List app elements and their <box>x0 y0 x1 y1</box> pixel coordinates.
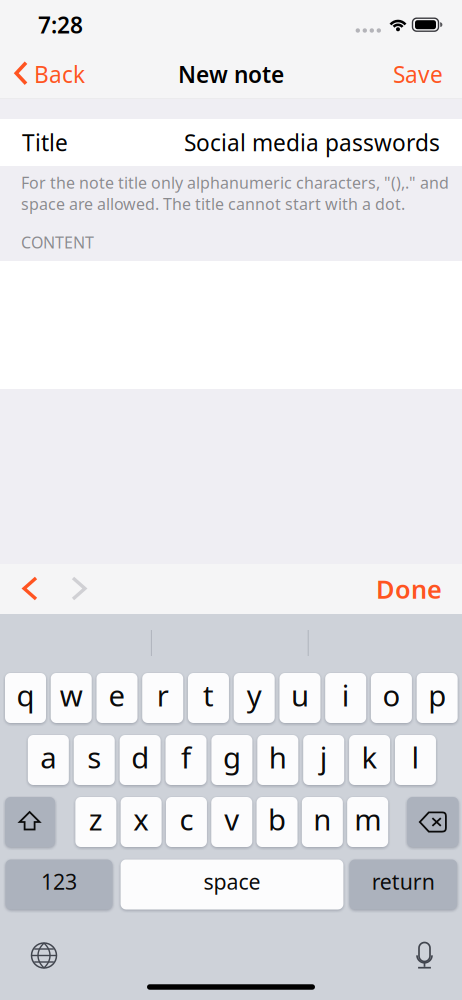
staticText: g <box>223 737 241 776</box>
staticText: h <box>269 737 287 776</box>
staticText: f <box>181 737 191 776</box>
staticText: Back <box>34 59 85 89</box>
button[interactable]: u <box>279 673 320 723</box>
staticText: For the note title only alphanumeric cha… <box>21 172 449 193</box>
staticText: n <box>313 799 331 838</box>
staticText: z <box>89 799 103 838</box>
button[interactable]: return <box>349 859 457 909</box>
button[interactable]: w <box>51 673 92 723</box>
staticText: k <box>362 737 378 776</box>
staticText: j <box>320 737 328 776</box>
staticText: y <box>247 675 262 714</box>
button[interactable]: s <box>74 735 115 785</box>
staticText: space are allowed. The title cannot star… <box>21 193 405 214</box>
staticText: q <box>16 675 34 714</box>
button[interactable]: r <box>142 673 183 723</box>
button[interactable]: Dictate <box>415 941 433 969</box>
staticText: Save <box>393 59 443 89</box>
staticText: b <box>268 799 286 838</box>
staticText: Done <box>376 572 442 606</box>
staticText: w <box>60 675 83 714</box>
button[interactable]: a <box>28 735 69 785</box>
button[interactable]: 123 <box>5 859 112 909</box>
button[interactable]: b <box>256 797 297 847</box>
staticText: d <box>131 737 149 776</box>
button[interactable]: v <box>211 797 252 847</box>
button[interactable]: d <box>120 735 161 785</box>
button[interactable]: Shift <box>5 797 55 847</box>
button[interactable]: space <box>121 859 343 909</box>
button[interactable]: y <box>234 673 275 723</box>
staticText: Title <box>22 127 68 157</box>
button[interactable]: Previous field <box>0 565 73 613</box>
button[interactable]: Delete <box>407 797 459 847</box>
staticText: x <box>133 799 149 838</box>
staticText: s <box>87 737 101 776</box>
button[interactable]: k <box>349 735 390 785</box>
staticText: o <box>382 675 400 714</box>
staticText: CONTENT <box>21 232 94 253</box>
button[interactable]: t <box>188 673 229 723</box>
staticText: return <box>372 867 435 896</box>
button[interactable]: Change keyboard <box>30 941 58 969</box>
button[interactable]: p <box>417 673 458 723</box>
button[interactable]: n <box>302 797 343 847</box>
button[interactable]: x <box>121 797 162 847</box>
button[interactable]: l <box>395 735 436 785</box>
staticText: space <box>203 867 260 896</box>
staticText: Insta: 17Hg%22bNZ&2s <box>21 576 257 604</box>
staticText: t <box>203 675 214 714</box>
staticText: New note <box>178 59 284 89</box>
button[interactable]: f <box>165 735 206 785</box>
button[interactable]: Next field <box>73 565 118 613</box>
button[interactable]: z <box>75 797 116 847</box>
button[interactable]: e <box>96 673 137 723</box>
button[interactable]: o <box>371 673 412 723</box>
button[interactable]: Back <box>0 51 85 97</box>
staticText: v <box>224 799 239 838</box>
staticText: c <box>179 799 193 838</box>
button[interactable]: c <box>166 797 207 847</box>
staticText: Twitter: Q2r&4j%6H9Hltd <box>21 552 277 580</box>
button[interactable]: Done <box>356 558 462 620</box>
staticText: i <box>342 675 350 714</box>
button[interactable]: h <box>257 735 298 785</box>
button[interactable]: m <box>347 797 388 847</box>
staticText: l <box>411 737 419 776</box>
button[interactable]: j <box>303 735 344 785</box>
staticText: e <box>108 675 125 714</box>
staticText: r <box>157 675 169 714</box>
button[interactable]: q <box>5 673 46 723</box>
staticText: 123 <box>41 867 77 896</box>
staticText: m <box>354 799 381 838</box>
staticText: a <box>40 737 56 776</box>
staticText: Social media passwords <box>184 127 440 157</box>
staticText: 7:28 <box>38 10 83 40</box>
button[interactable]: Save <box>393 51 462 97</box>
button[interactable]: i <box>325 673 366 723</box>
staticText: u <box>291 675 309 714</box>
button[interactable]: g <box>211 735 252 785</box>
staticText: p <box>428 675 446 714</box>
